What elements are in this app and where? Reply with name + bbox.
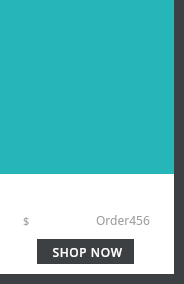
staticText: Order456: [96, 212, 150, 228]
staticText: SHOP NOW: [52, 244, 123, 260]
staticText: $: [23, 213, 30, 228]
button[interactable]: SHOP NOW: [37, 239, 134, 264]
